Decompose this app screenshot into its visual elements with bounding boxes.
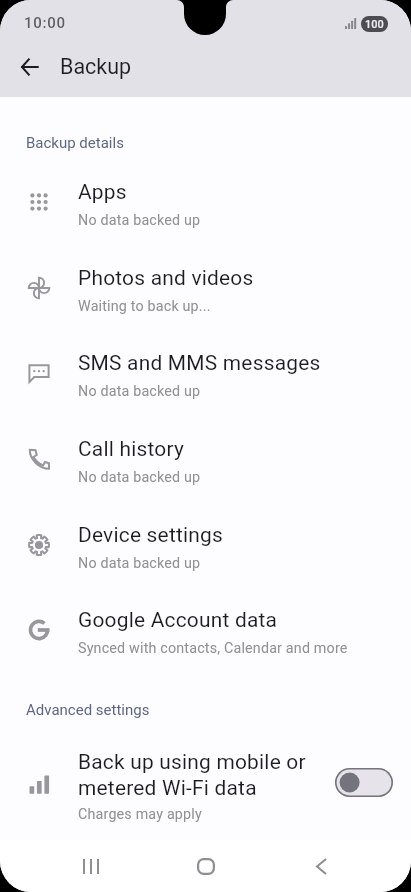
button[interactable]: Recent apps bbox=[65, 840, 117, 892]
other: Photos and videos bbox=[27, 276, 51, 300]
staticText: Call history bbox=[78, 437, 185, 461]
staticText: No data backed up bbox=[78, 555, 201, 572]
button[interactable]: Photos and videos bbox=[0, 251, 411, 337]
staticText: 100 bbox=[365, 18, 384, 31]
staticText: Synced with contacts, Calendar and more bbox=[78, 640, 348, 657]
button[interactable]: Back bbox=[295, 840, 347, 892]
staticText: No data backed up bbox=[78, 212, 201, 229]
staticText: Photos and videos bbox=[78, 266, 254, 290]
other: Call history bbox=[27, 447, 51, 471]
other: Device settings bbox=[27, 533, 51, 557]
button[interactable]: SMS and MMS messages bbox=[0, 336, 411, 422]
staticText: No data backed up bbox=[78, 383, 201, 400]
staticText: Advanced settings bbox=[26, 701, 150, 719]
staticText: No data backed up bbox=[78, 469, 201, 486]
other: Google Account data bbox=[27, 618, 51, 642]
staticText: 10:00 bbox=[24, 14, 66, 32]
staticText: SMS and MMS messages bbox=[78, 351, 321, 375]
staticText: Device settings bbox=[78, 523, 224, 547]
staticText: Charges may apply bbox=[78, 806, 202, 823]
staticText: Backup details bbox=[26, 134, 124, 152]
button[interactable]: Mobile data bbox=[0, 725, 411, 817]
button[interactable]: Back bbox=[6, 43, 54, 91]
button[interactable]: Call history bbox=[0, 422, 411, 508]
staticText: Waiting to back up... bbox=[78, 298, 211, 315]
other: SMS and MMS messages bbox=[27, 361, 51, 385]
staticText: Apps bbox=[78, 180, 127, 204]
other: Apps bbox=[27, 190, 51, 214]
button[interactable]: Apps bbox=[0, 165, 411, 251]
staticText: Back up using mobile or metered Wi-Fi da… bbox=[78, 750, 330, 800]
button[interactable]: Device settings bbox=[0, 508, 411, 594]
button[interactable]: Google Account data bbox=[0, 593, 411, 679]
other: Mobile data bbox=[27, 773, 51, 797]
button[interactable]: Home bbox=[180, 840, 232, 892]
staticText: Google Account data bbox=[78, 608, 278, 632]
staticText: Backup bbox=[60, 54, 132, 79]
button[interactable]: Back up using mobile or metered Wi-Fi da… bbox=[335, 768, 393, 797]
